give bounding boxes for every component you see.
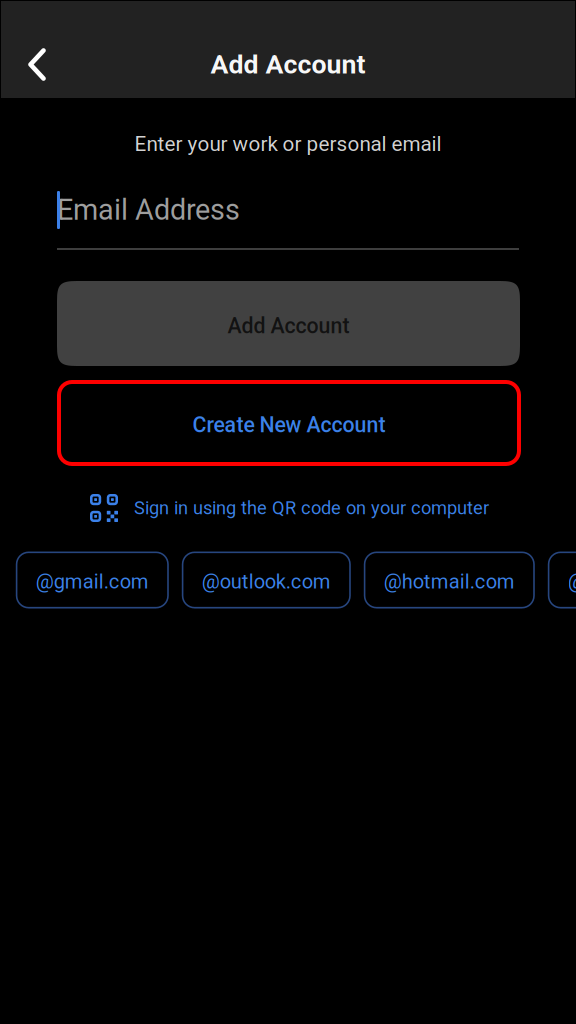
button[interactable]: Back [1,0,73,113]
button[interactable]: @gmail.com [16,551,169,608]
staticText: Create New Account [192,412,385,437]
button[interactable]: Create New Account [57,380,521,466]
staticText: Enter your work or personal email [134,132,441,156]
button[interactable]: @hotmail.com [364,551,535,608]
button[interactable]: Sign in using the QR code on your comput… [90,492,489,524]
button[interactable]: @yahoo.com [548,551,576,608]
staticText: @gmail.com [36,570,149,593]
staticText: Add Account [210,49,365,80]
staticText: Add Account [227,313,349,338]
staticText: Sign in using the QR code on your comput… [134,497,489,519]
button[interactable]: Add Account [57,281,520,366]
staticText: @yahoo.com [568,570,576,593]
staticText: @hotmail.com [384,570,515,593]
staticText: @outlook.com [202,570,331,593]
button[interactable]: @outlook.com [182,551,351,608]
staticText: Email Address [57,193,240,227]
